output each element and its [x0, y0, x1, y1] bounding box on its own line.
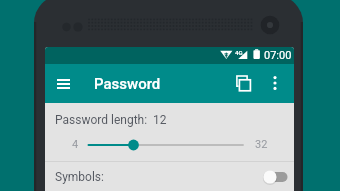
button[interactable]: Copy password — [222, 67, 250, 97]
button[interactable]: Open navigation menu — [49, 70, 77, 98]
staticText: 4 — [72, 138, 79, 151]
staticText: Password — [94, 75, 161, 93]
staticText: 4G — [235, 49, 243, 56]
staticText: Password length: 12 — [55, 113, 167, 127]
staticText: Symbols: — [55, 170, 104, 184]
button[interactable]: More options — [264, 67, 290, 97]
button[interactable]: Symbols: — [45, 162, 294, 191]
staticText: 32 — [255, 138, 268, 151]
button[interactable]: Password length: 12 — [45, 103, 294, 161]
staticText: 07:00 — [264, 49, 292, 62]
